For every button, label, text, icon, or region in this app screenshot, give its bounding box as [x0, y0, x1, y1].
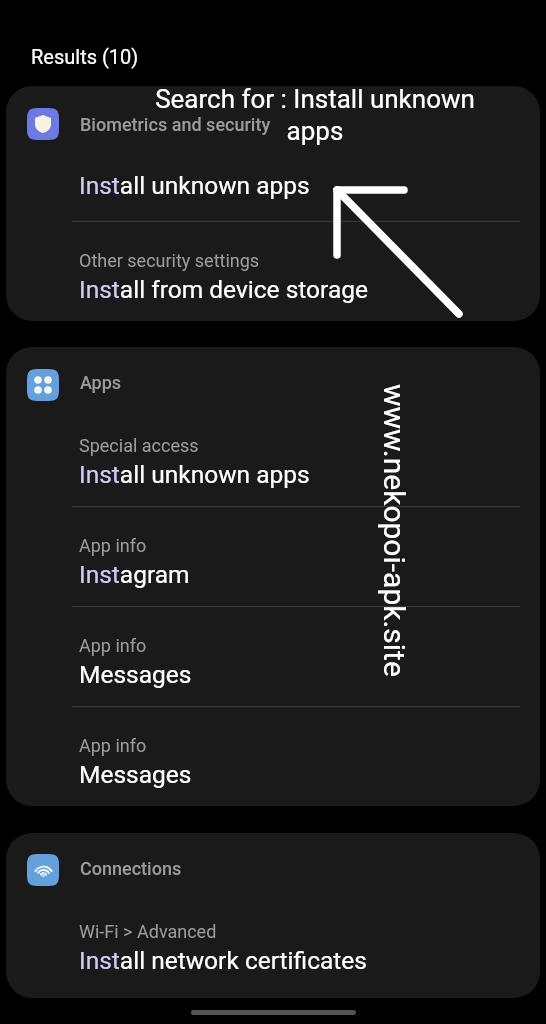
other: Connections [27, 854, 59, 886]
button[interactable]: App info [6, 506, 540, 606]
staticText: Instagram [79, 560, 190, 589]
staticText: App info [79, 535, 147, 556]
staticText: Biometrics and security [80, 114, 271, 135]
other: Biometrics and security [27, 108, 59, 140]
button[interactable]: App info [6, 706, 540, 806]
button[interactable]: Install unknown apps [6, 141, 540, 221]
staticText: Apps [80, 372, 122, 393]
staticText: App info [79, 635, 147, 656]
button[interactable]: Special access [6, 406, 540, 506]
other: Apps [27, 369, 59, 401]
staticText: Install unknown apps [79, 460, 310, 489]
staticText: Search for : Install unknown apps [155, 84, 475, 146]
staticText: Special access [79, 435, 199, 456]
button[interactable]: App info [6, 606, 540, 706]
staticText: Other security settings [79, 250, 260, 271]
staticText: Messages [79, 760, 192, 789]
staticText: Messages [79, 660, 192, 689]
staticText: www.nekopoi-apk.site [377, 384, 412, 677]
button[interactable]: Other security settings [6, 221, 540, 321]
staticText: Wi-Fi > Advanced [79, 921, 217, 942]
button[interactable]: Wi-Fi > Advanced [6, 892, 540, 992]
staticText: Install network certificates [79, 946, 367, 975]
staticText: Install unknown apps [79, 171, 310, 200]
staticText: Results (10) [31, 45, 139, 68]
staticText: Install from device storage [79, 275, 368, 304]
staticText: Connections [80, 858, 182, 879]
staticText: App info [79, 735, 147, 756]
